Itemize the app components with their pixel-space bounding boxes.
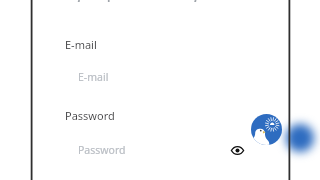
- staticText: E-mail: [78, 70, 109, 84]
- button[interactable]: Sign up: [32, 0, 146, 2]
- staticText: Log in: [168, 0, 217, 2]
- button[interactable]: Log in: [160, 0, 274, 2]
- staticText: E-mail: [65, 37, 97, 52]
- staticText: Password: [65, 108, 115, 123]
- button[interactable]: E-mail: [64, 64, 224, 90]
- staticText: Password: [78, 143, 126, 157]
- button[interactable]: Password: [64, 137, 224, 163]
- staticText: Sign up: [57, 0, 118, 2]
- button[interactable]: Show password: [227, 140, 247, 160]
